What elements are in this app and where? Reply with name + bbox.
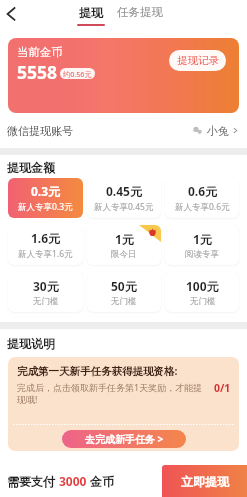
staticText: 完成第一天新手任务获得提现资格:: [17, 364, 178, 378]
staticText: 提现金额: [7, 160, 55, 175]
button[interactable]: 1.6元: [8, 225, 83, 265]
staticText: 小兔: [207, 124, 229, 138]
staticText: 提现说明: [7, 336, 55, 351]
staticText: 0.45元: [106, 183, 142, 199]
button[interactable]: 任务提现: [114, 0, 166, 30]
staticText: 约0.56元: [63, 69, 92, 79]
staticText: 无门槛: [33, 296, 59, 307]
staticText: 无门槛: [111, 296, 137, 307]
staticText: 新人专享0.45元: [94, 201, 154, 213]
staticText: 新人专享0.3元: [18, 201, 73, 213]
staticText: 5558: [17, 60, 58, 84]
staticText: 需要支付: [7, 473, 59, 489]
staticText: 新人专享1.6元: [18, 248, 73, 260]
staticText: 0.3元: [31, 183, 61, 199]
staticText: 100元: [186, 278, 219, 294]
staticText: 阅读专享: [185, 249, 219, 260]
button[interactable]: 微信提现账号: [0, 113, 247, 148]
staticText: 立即提现: [181, 474, 229, 489]
staticText: 当前金币: [17, 45, 63, 59]
staticText: 3000: [59, 473, 87, 489]
staticText: 0.6元: [188, 183, 218, 199]
staticText: 去完成新手任务 >: [85, 432, 164, 446]
button[interactable]: 1元: [165, 225, 239, 265]
staticText: 新人专享0.6元: [175, 201, 230, 213]
button[interactable]: 0.6元: [165, 178, 239, 218]
staticText: 30元: [33, 278, 59, 294]
button[interactable]: 提现记录: [169, 50, 226, 71]
button[interactable]: 提现: [74, 0, 108, 31]
staticText: 1元: [115, 231, 134, 247]
staticText: 微信提现账号: [7, 124, 73, 138]
staticText: 提现: [79, 5, 103, 20]
button[interactable]: 50元: [87, 272, 161, 312]
button[interactable]: 30元: [8, 272, 83, 312]
button[interactable]: 1元: [87, 225, 161, 265]
staticText: 任务提现: [117, 5, 163, 19]
staticText: 完成后，点击领取新手任务第1天奖励，才能提现哦!: [17, 381, 210, 406]
staticText: 50元: [111, 278, 137, 294]
staticText: 1.6元: [31, 230, 61, 246]
staticText: 1元: [193, 231, 212, 247]
button[interactable]: 100元: [165, 272, 239, 312]
staticText: 提现记录: [177, 54, 219, 67]
button[interactable]: 0.3元: [8, 178, 83, 218]
button[interactable]: 立即提现: [162, 465, 247, 497]
staticText: 无门槛: [190, 296, 216, 307]
button[interactable]: Back: [1, 3, 21, 23]
button[interactable]: 0.45元: [87, 178, 161, 218]
staticText: 限今日: [111, 249, 137, 260]
staticText: 0/1: [214, 381, 231, 395]
button[interactable]: 去完成新手任务 >: [62, 430, 186, 448]
staticText: 金币: [87, 473, 115, 489]
